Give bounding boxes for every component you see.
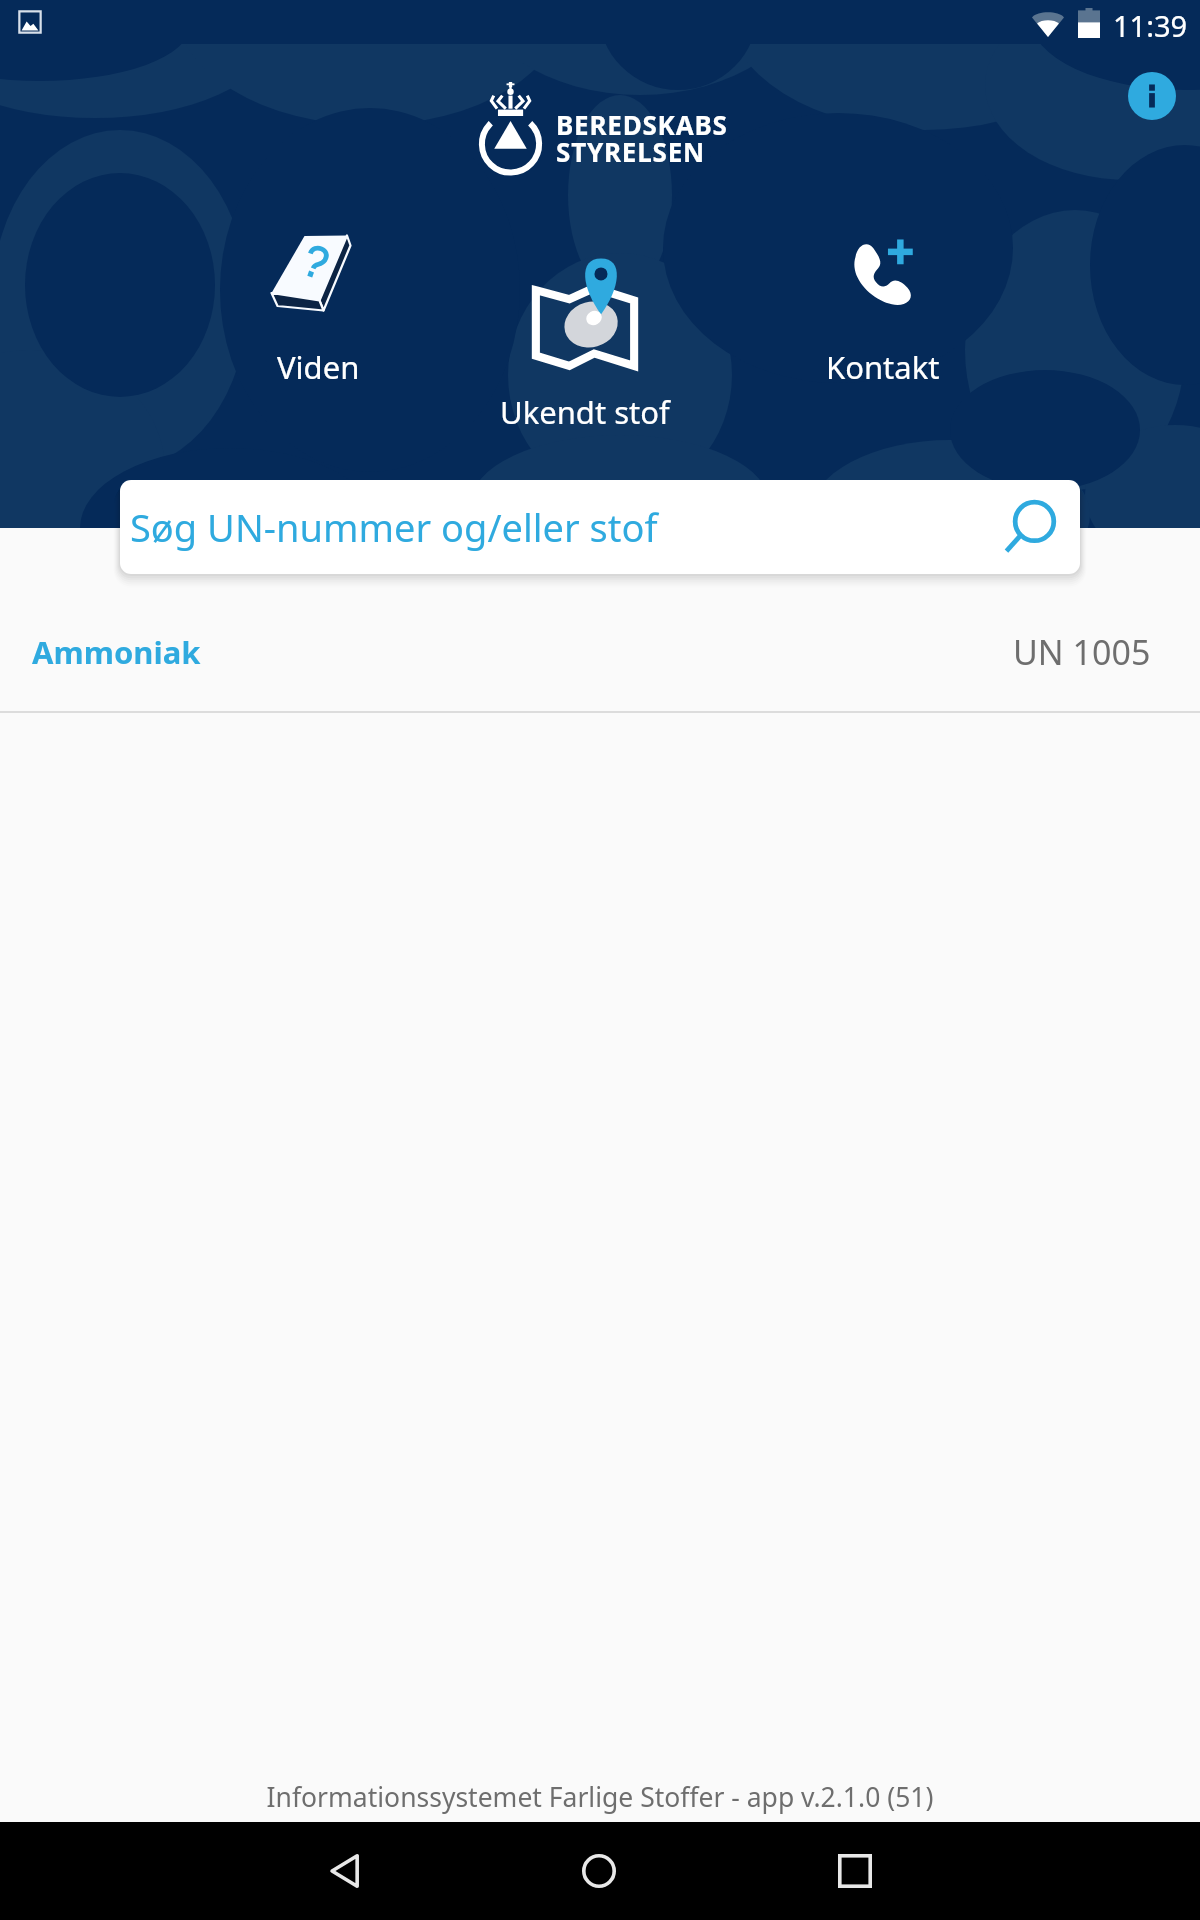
button[interactable]: Ammoniak	[0, 583, 1200, 720]
button[interactable]: Information	[1128, 72, 1176, 120]
button[interactable]: Home	[565, 1837, 633, 1905]
staticText: Ukendt stof	[500, 391, 670, 433]
button[interactable]: Back	[311, 1837, 379, 1905]
button[interactable]: Søg UN-nummer og/eller stof	[120, 480, 1080, 574]
other: Screenshot	[16, 8, 44, 36]
button[interactable]: Recent apps	[821, 1837, 889, 1905]
staticText: STYRELSEN	[556, 134, 705, 169]
staticText: BEREDSKABS	[556, 107, 728, 142]
staticText: 11:39	[1113, 6, 1188, 45]
staticText: Kontakt	[826, 346, 940, 388]
button[interactable]: Ukendt stof	[470, 258, 700, 413]
staticText: Informationssystemet Farlige Stoffer - a…	[0, 1779, 1200, 1815]
staticText: Viden	[277, 346, 360, 388]
staticText: UN 1005	[1013, 629, 1151, 675]
staticText: Ammoniak	[32, 631, 201, 673]
staticText: Søg UN-nummer og/eller stof	[130, 501, 658, 553]
button[interactable]: Kontakt	[791, 238, 975, 346]
button[interactable]: Viden	[228, 226, 408, 368]
